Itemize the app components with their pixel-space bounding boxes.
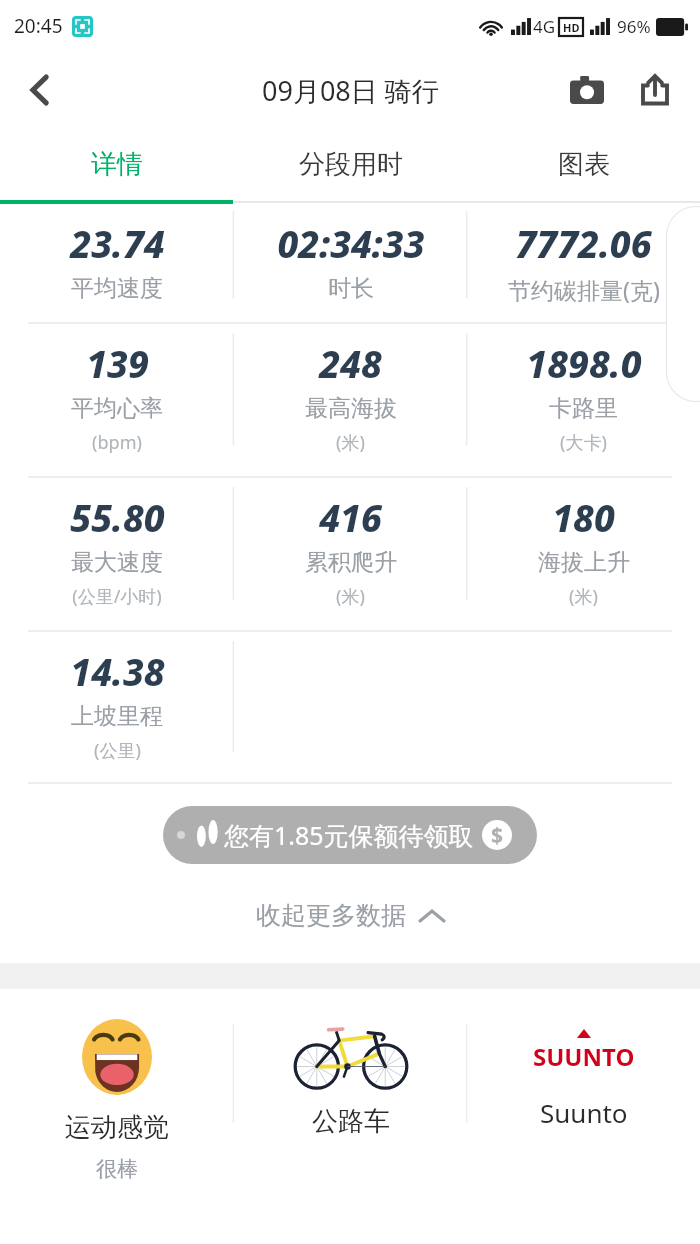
staticText: 详情 (91, 148, 143, 181)
staticText: (米) (336, 584, 365, 609)
staticText: 图表 (558, 148, 610, 181)
staticText: (米) (569, 584, 598, 609)
staticText: 02:34:33 (277, 218, 425, 268)
staticText: 时长 (328, 274, 374, 303)
staticText: (米) (336, 430, 365, 455)
button[interactable]: 180 (467, 478, 700, 630)
staticText: 最高海拔 (305, 394, 397, 423)
button[interactable]: 分段用时 (234, 128, 467, 200)
staticText: 139 (86, 338, 149, 388)
button[interactable]: 139 (0, 324, 234, 476)
button[interactable]: 图表 (467, 128, 700, 200)
staticText: 55.80 (70, 492, 165, 542)
staticText: (bpm) (92, 430, 142, 455)
staticText: 最大速度 (71, 548, 163, 577)
staticText: 运动感觉 (65, 1111, 169, 1144)
staticText: 卡路里 (549, 394, 618, 423)
staticText: SUUNTO (533, 1040, 635, 1073)
staticText: 09月08日 骑行 (262, 72, 439, 109)
staticText: 您有1.85元保额待领取 (224, 818, 474, 852)
staticText: 海拔上升 (538, 548, 630, 577)
button[interactable]: Share (626, 61, 684, 119)
staticText: Suunto (540, 1095, 628, 1130)
button[interactable]: SUUNTO (467, 989, 700, 1205)
staticText: 20:45 (14, 13, 63, 39)
staticText: 公路车 (312, 1105, 390, 1138)
button[interactable]: 公路车 (234, 989, 467, 1205)
staticText: 1898.0 (526, 338, 642, 388)
button[interactable]: 1898.0 (467, 324, 700, 476)
button[interactable]: 收起更多数据 (236, 892, 464, 939)
staticText: (公里/小时) (72, 584, 162, 609)
staticText: 23.74 (70, 218, 165, 268)
staticText: 收起更多数据 (256, 900, 406, 931)
staticText: 累积爬升 (305, 548, 397, 577)
staticText: 分段用时 (299, 148, 403, 181)
staticText: 14.38 (70, 646, 165, 696)
button[interactable]: 02:34:33 (234, 204, 467, 322)
staticText: 248 (319, 338, 382, 388)
button[interactable]: 248 (234, 324, 467, 476)
staticText: (大卡) (560, 430, 607, 455)
staticText: HD (563, 20, 580, 35)
staticText: 平均心率 (71, 394, 163, 423)
button[interactable]: 55.80 (0, 478, 234, 630)
staticText: 7772.06 (515, 218, 652, 268)
staticText: 平均速度 (71, 274, 163, 303)
staticText: (公里) (94, 738, 141, 763)
button[interactable]: 您有1.85元保额待领取 (163, 806, 537, 864)
button[interactable]: 416 (234, 478, 467, 630)
staticText: 96% (617, 15, 651, 38)
button[interactable]: 运动感觉 (0, 989, 234, 1205)
staticText: 416 (319, 492, 382, 542)
button[interactable]: Camera (558, 61, 616, 119)
staticText: 180 (552, 492, 615, 542)
staticText: 节约碳排量(克) (508, 274, 660, 305)
button[interactable]: 7772.06 (467, 204, 700, 322)
staticText: 很棒 (96, 1156, 138, 1182)
button[interactable]: 详情 (0, 128, 234, 200)
button[interactable]: 14.38 (0, 632, 234, 782)
button[interactable]: 23.74 (0, 204, 234, 322)
staticText: 上坡里程 (71, 702, 163, 731)
staticText: 4G (533, 15, 556, 38)
button[interactable]: Back (8, 58, 72, 122)
staticText: $ (491, 821, 504, 850)
